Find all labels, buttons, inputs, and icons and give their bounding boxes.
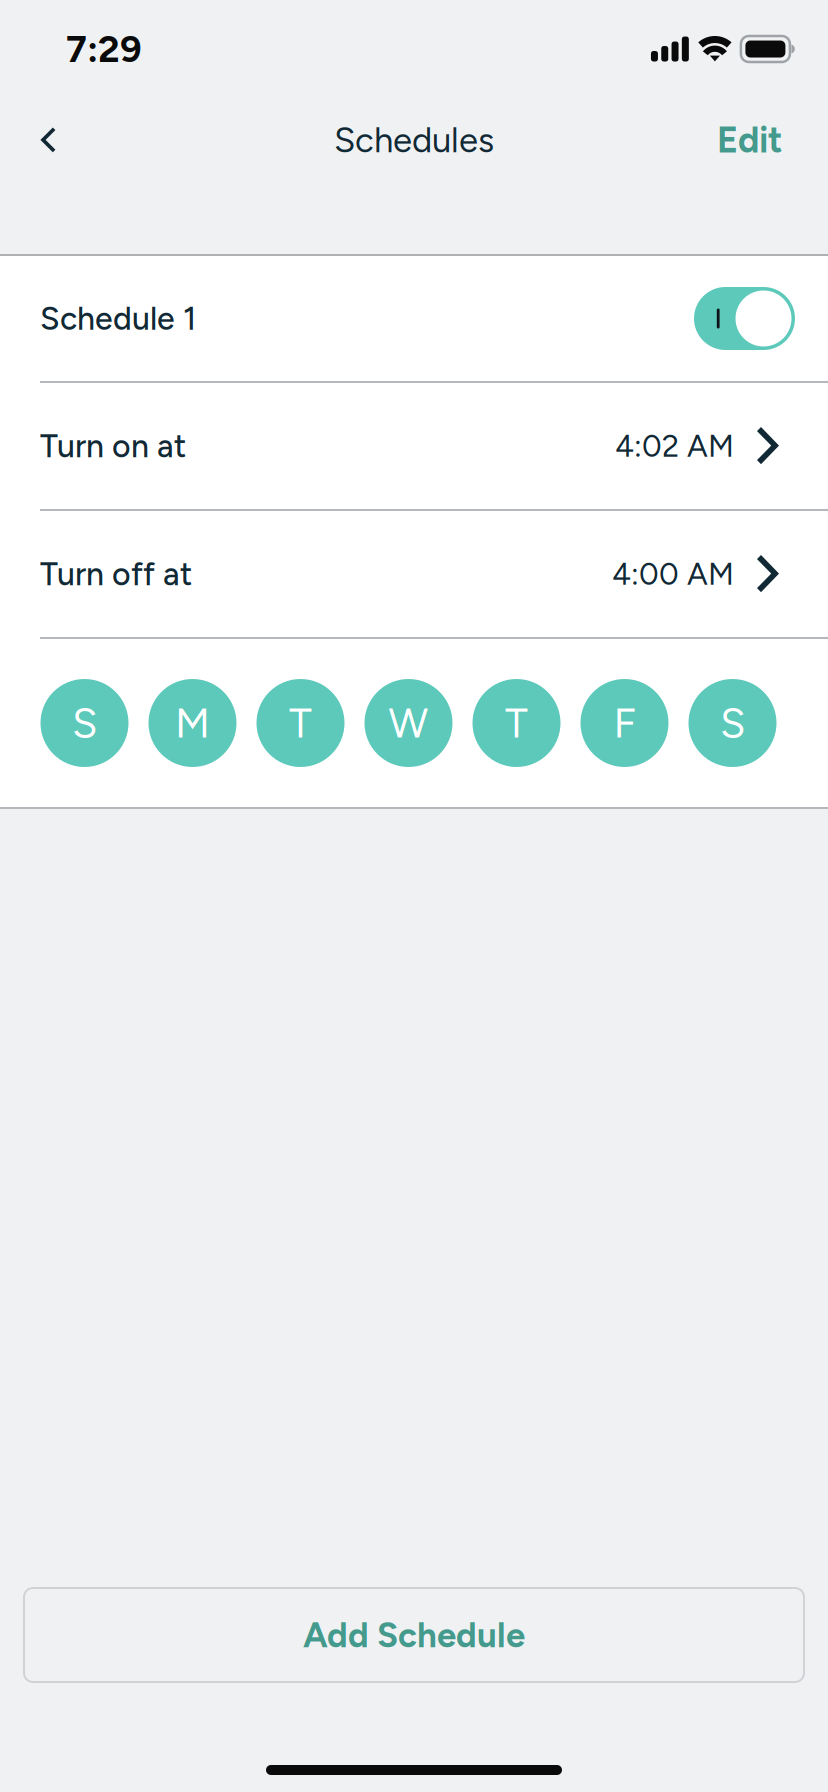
staticText: Schedules	[334, 119, 494, 161]
staticText: T	[505, 698, 528, 748]
staticText: F	[613, 698, 635, 748]
button[interactable]: T	[256, 679, 344, 767]
staticText: Add Schedule	[303, 1614, 525, 1656]
button[interactable]: T	[472, 679, 560, 767]
staticText: Edit	[717, 118, 782, 162]
button[interactable]: Edit	[693, 98, 806, 182]
staticText: 4:02 AM	[615, 428, 734, 464]
button[interactable]: Turn off at	[0, 511, 828, 637]
button[interactable]: F	[580, 679, 668, 767]
button[interactable]: Turn on at	[0, 383, 828, 509]
button[interactable]: Schedule 1 enabled	[694, 287, 795, 350]
button[interactable]: Back	[0, 98, 96, 182]
staticText: W	[388, 698, 428, 748]
staticText: S	[720, 698, 745, 748]
button[interactable]: M	[148, 679, 236, 767]
staticText: T	[289, 698, 312, 748]
staticText: Turn on at	[40, 427, 186, 465]
staticText: S	[72, 698, 97, 748]
button[interactable]: W	[364, 679, 452, 767]
staticText: 7:29	[66, 27, 142, 71]
button[interactable]: S	[688, 679, 776, 767]
staticText: 4:00 AM	[612, 556, 734, 592]
staticText: Turn off at	[40, 555, 192, 593]
button[interactable]: S	[40, 679, 128, 767]
staticText: M	[175, 698, 210, 748]
staticText: Schedule 1	[40, 299, 196, 338]
button[interactable]: Add Schedule	[24, 1588, 804, 1682]
